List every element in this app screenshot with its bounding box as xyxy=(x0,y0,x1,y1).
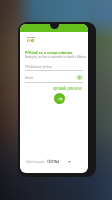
staticText: Nakupuj on-line a vyzvedni si zboží v Ma… xyxy=(25,55,86,59)
staticText: MAKRO xyxy=(27,36,36,39)
staticText: Přihlaš se a vstup zdarma xyxy=(25,50,73,55)
staticText: Vyberte jazyk: xyxy=(26,160,45,164)
button[interactable]: Sign in xyxy=(54,93,65,104)
button[interactable]: Heslo xyxy=(25,74,83,83)
button[interactable]: ZAPOMNĚL JSEM HESLO xyxy=(53,87,83,90)
staticText: Přihlašovací jméno xyxy=(25,65,52,69)
button[interactable]: Show password xyxy=(76,74,83,81)
staticText: Heslo xyxy=(25,76,34,80)
staticText: ČEŠTINA xyxy=(47,160,60,164)
button[interactable]: Přihlašovací jméno xyxy=(25,65,83,71)
button[interactable]: ČEŠTINA xyxy=(47,160,71,164)
